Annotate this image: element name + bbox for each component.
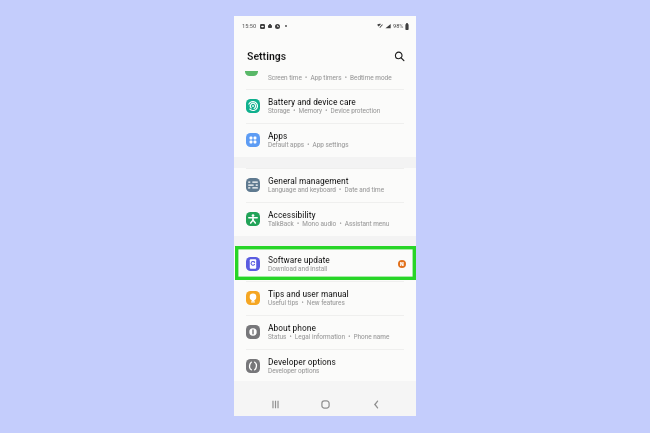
button[interactable]: Home: [316, 395, 334, 413]
staticText: Language and keyboard • Date and time: [268, 186, 385, 194]
staticText: Default apps • App settings: [268, 141, 349, 149]
button[interactable]: Battery and device care: [234, 90, 416, 123]
staticText: Developer options: [268, 367, 320, 375]
button[interactable]: Search: [391, 48, 407, 64]
staticText: Accessibility: [268, 210, 316, 220]
button[interactable]: General management: [234, 169, 416, 202]
staticText: Status • Legal information • Phone name: [268, 333, 390, 341]
staticText: TalkBack • Mono audio • Assistant menu: [268, 220, 390, 228]
staticText: 15:50: [242, 23, 257, 30]
button[interactable]: Software update: [234, 248, 416, 281]
staticText: Screen time • App timers • Bedtime mode: [268, 74, 392, 82]
staticText: Storage • Memory • Device protection: [268, 107, 381, 115]
staticText: N: [400, 261, 404, 267]
button[interactable]: Screen time • App timers • Bedtime mode: [234, 69, 416, 89]
staticText: About phone: [268, 323, 316, 333]
button[interactable]: Apps: [234, 124, 416, 157]
staticText: Download and install: [268, 265, 328, 273]
button[interactable]: Developer options: [234, 350, 416, 383]
staticText: General management: [268, 176, 349, 186]
staticText: Battery and device care: [268, 97, 356, 107]
staticText: Settings: [247, 50, 287, 62]
staticText: Useful tips • New features: [268, 299, 345, 307]
button[interactable]: Recent apps: [266, 395, 284, 413]
staticText: Apps: [268, 131, 288, 141]
staticText: 98%: [393, 23, 404, 30]
button[interactable]: Accessibility: [234, 203, 416, 236]
button[interactable]: Tips and user manual: [234, 282, 416, 315]
button[interactable]: Back: [367, 395, 385, 413]
staticText: Tips and user manual: [268, 289, 349, 299]
button[interactable]: About phone: [234, 316, 416, 349]
staticText: Developer options: [268, 357, 336, 367]
staticText: Software update: [268, 255, 330, 265]
